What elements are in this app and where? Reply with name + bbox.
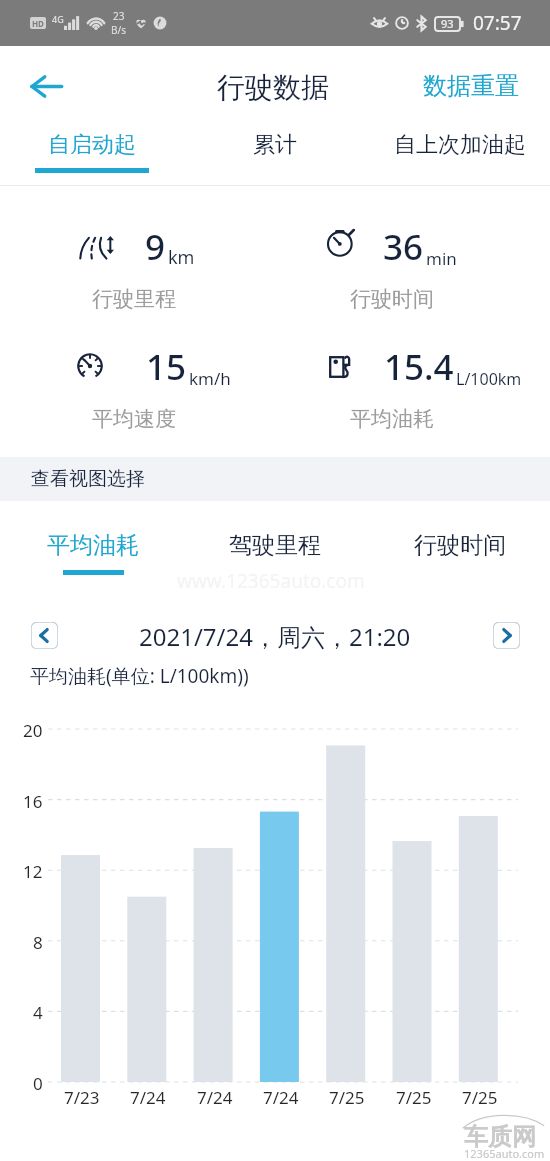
staticText: 驾驶里程 — [229, 531, 321, 560]
button[interactable]: 行驶时间 — [385, 520, 535, 586]
staticText: 平均油耗 — [47, 531, 139, 560]
staticText: 7/24 — [263, 1086, 299, 1109]
staticText: 2021/7/24，周六，21:20 — [139, 620, 411, 653]
staticText: 自启动起 — [48, 131, 136, 159]
staticText: 36 — [383, 223, 424, 271]
button[interactable]: 累计 — [195, 122, 355, 184]
staticText: 行驶里程 — [92, 286, 176, 312]
staticText: HD — [32, 18, 44, 29]
staticText: 自上次加油起 — [394, 131, 526, 159]
staticText: 20 — [23, 719, 43, 742]
button[interactable]: Previous — [31, 622, 58, 649]
button[interactable]: 平均油耗 — [18, 520, 168, 586]
staticText: min — [426, 247, 457, 270]
staticText: km — [168, 245, 195, 270]
staticText: 平均油耗 — [350, 406, 434, 432]
staticText: 7/24 — [197, 1086, 233, 1109]
staticText: 平均油耗(单位: L/100km)) — [30, 663, 249, 689]
staticText: 4G — [52, 13, 64, 25]
staticText: B/s — [111, 23, 127, 37]
staticText: 0 — [33, 1072, 43, 1095]
staticText: 7/25 — [329, 1086, 365, 1109]
staticText: 平均速度 — [92, 406, 176, 432]
staticText: km/h — [189, 367, 231, 390]
staticText: 行驶时间 — [414, 531, 506, 560]
staticText: 12 — [23, 860, 43, 883]
staticText: 16 — [23, 790, 43, 813]
staticText: 93 — [441, 16, 454, 31]
staticText: 07:57 — [473, 10, 522, 36]
staticText: 4 — [33, 1001, 43, 1024]
staticText: 行驶数据 — [217, 70, 329, 105]
button[interactable]: 自上次加油起 — [370, 122, 550, 184]
staticText: L/100km — [456, 368, 522, 390]
button[interactable]: 驾驶里程 — [200, 520, 350, 586]
staticText: 车质网 — [464, 1122, 536, 1152]
staticText: 9 — [145, 223, 166, 271]
staticText: 12365auto.com — [464, 1146, 545, 1161]
staticText: 查看视图选择 — [31, 467, 145, 491]
staticText: 累计 — [253, 131, 297, 159]
staticText: 行驶时间 — [350, 286, 434, 312]
button[interactable]: Next — [493, 622, 520, 649]
button[interactable]: 自启动起 — [12, 122, 172, 184]
staticText: 7/25 — [396, 1086, 432, 1109]
staticText: 8 — [33, 931, 43, 954]
staticText: 7/25 — [462, 1086, 498, 1109]
staticText: 15 — [146, 343, 187, 391]
button[interactable]: 数据重置 — [406, 62, 536, 110]
staticText: 数据重置 — [423, 71, 519, 101]
staticText: 23 — [113, 9, 125, 23]
button[interactable]: Back — [18, 62, 74, 110]
staticText: 7/24 — [130, 1086, 166, 1109]
staticText: 15.4 — [384, 343, 454, 391]
staticText: www.12365auto.com — [177, 568, 365, 594]
staticText: 7/23 — [64, 1086, 100, 1109]
